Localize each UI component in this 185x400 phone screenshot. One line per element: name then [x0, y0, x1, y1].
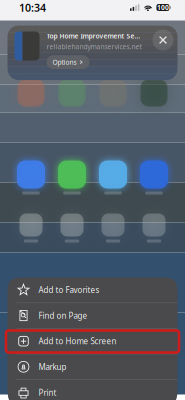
staticText: Add to Favorites	[38, 285, 99, 295]
button[interactable]: Print	[7, 380, 177, 400]
staticText: reliablehandymanservices.net	[46, 42, 141, 51]
button[interactable]: Options	[46, 55, 89, 69]
button[interactable]: Add to Home Screen	[7, 329, 177, 354]
staticText: Options	[52, 58, 76, 67]
staticText: Top Home Improvement Se…	[46, 31, 140, 40]
button[interactable]: Markup	[7, 354, 177, 380]
staticText: 10:34	[19, 0, 46, 15]
staticText: Add to Home Screen	[38, 336, 116, 346]
staticText: Markup	[38, 361, 66, 372]
button[interactable]: Find on Page	[7, 303, 177, 329]
staticText: Find on Page	[38, 310, 87, 321]
staticText: Print	[38, 387, 56, 398]
button[interactable]: Close	[152, 29, 173, 50]
staticText: 100	[157, 3, 169, 12]
button[interactable]: Add to Favorites	[7, 277, 177, 303]
